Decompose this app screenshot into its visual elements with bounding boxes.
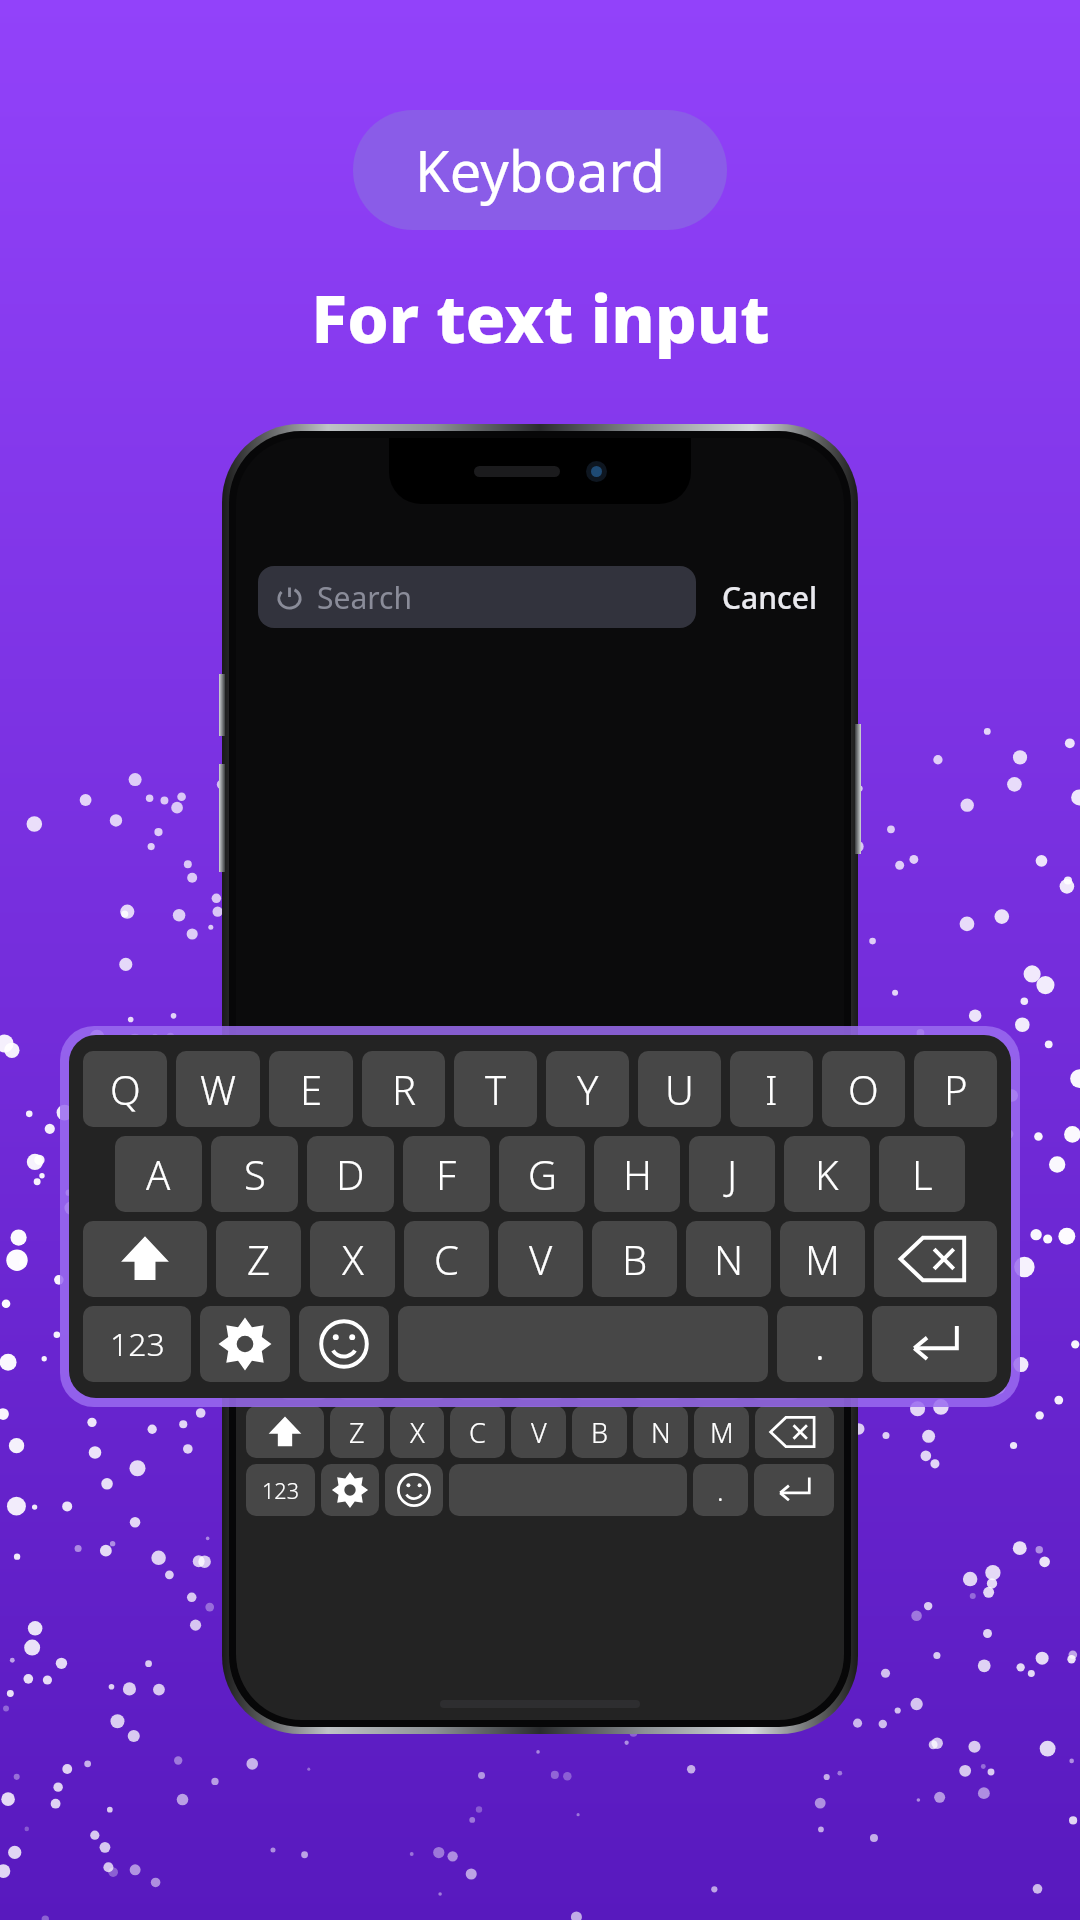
button[interactable]: C [450, 1406, 505, 1458]
staticText: X [342, 1232, 364, 1286]
button[interactable]: O [722, 1290, 775, 1342]
button[interactable]: G [499, 1136, 585, 1212]
button[interactable]: Y [546, 1051, 629, 1127]
staticText: N [714, 1232, 744, 1286]
button[interactable]: I [663, 1290, 716, 1342]
staticText: K [815, 1147, 839, 1201]
button[interactable]: P [914, 1051, 997, 1127]
button[interactable]: Enter [872, 1306, 997, 1382]
button[interactable]: . [777, 1306, 863, 1382]
button[interactable]: S [211, 1136, 298, 1212]
button[interactable]: V [498, 1221, 583, 1297]
staticText: T [505, 1298, 520, 1335]
button[interactable]: K [690, 1348, 743, 1400]
staticText: Search [317, 577, 412, 618]
staticText: N [651, 1414, 671, 1451]
button[interactable]: H [594, 1136, 680, 1212]
staticText: K [709, 1356, 725, 1393]
staticText: V [529, 1232, 553, 1286]
staticText: P [944, 1062, 968, 1116]
button[interactable]: R [426, 1290, 480, 1342]
staticText: V [531, 1414, 547, 1451]
button[interactable]: H [572, 1348, 625, 1400]
button[interactable]: Z [330, 1406, 384, 1458]
button[interactable]: M [780, 1221, 865, 1297]
button[interactable]: D [395, 1348, 448, 1400]
button[interactable]: Shift [246, 1406, 324, 1458]
staticText: M [805, 1232, 840, 1286]
button[interactable]: F [454, 1348, 507, 1400]
button[interactable]: . [693, 1464, 748, 1516]
staticText: C [469, 1414, 486, 1451]
staticText: H [589, 1356, 609, 1393]
button[interactable]: B [592, 1221, 677, 1297]
button[interactable]: L [749, 1348, 802, 1400]
button[interactable]: Emoji [385, 1464, 443, 1516]
staticText: F [436, 1147, 457, 1201]
button[interactable]: Search [258, 566, 696, 628]
button[interactable]: Q [83, 1051, 167, 1127]
button[interactable]: K [784, 1136, 870, 1212]
button[interactable]: P [781, 1290, 834, 1342]
button[interactable]: T [486, 1290, 539, 1342]
staticText: Cancel [722, 577, 818, 618]
button[interactable]: D [307, 1136, 394, 1212]
button[interactable]: Cancel [718, 573, 822, 622]
button[interactable]: Keyboard [353, 110, 727, 230]
staticText: O [848, 1062, 879, 1116]
button[interactable]: M [694, 1406, 749, 1458]
button[interactable]: Emoji [299, 1306, 389, 1382]
staticText: E [300, 1062, 323, 1116]
button[interactable]: N [686, 1221, 771, 1297]
staticText: D [412, 1356, 432, 1393]
button[interactable]: G [513, 1348, 566, 1400]
button[interactable]: B [572, 1406, 627, 1458]
staticText: F [474, 1356, 488, 1393]
staticText: H [623, 1147, 652, 1201]
button[interactable]: S [336, 1348, 389, 1400]
button[interactable]: X [390, 1406, 444, 1458]
button[interactable]: O [822, 1051, 905, 1127]
button[interactable]: Q [246, 1290, 300, 1342]
staticText: J [727, 1147, 738, 1201]
button[interactable]: F [403, 1136, 490, 1212]
staticText: J [654, 1356, 661, 1393]
button[interactable]: L [879, 1136, 965, 1212]
button[interactable]: E [366, 1290, 420, 1342]
button[interactable]: Backspace [874, 1221, 997, 1297]
button[interactable]: X [310, 1221, 395, 1297]
button[interactable]: 123 [246, 1464, 315, 1516]
button[interactable]: T [454, 1051, 537, 1127]
button[interactable]: E [269, 1051, 353, 1127]
button[interactable]: W [176, 1051, 260, 1127]
button[interactable]: Shift [83, 1221, 207, 1297]
button[interactable]: W [306, 1290, 360, 1342]
button[interactable]: J [689, 1136, 775, 1212]
button[interactable]: Y [545, 1290, 598, 1342]
button[interactable]: 123 [83, 1306, 191, 1382]
button[interactable]: Settings [321, 1464, 379, 1516]
button[interactable]: J [631, 1348, 684, 1400]
button[interactable]: V [511, 1406, 566, 1458]
staticText: G [530, 1356, 550, 1393]
button[interactable]: N [633, 1406, 688, 1458]
button[interactable]: Backspace [755, 1406, 834, 1458]
button[interactable]: Z [216, 1221, 301, 1297]
button[interactable]: A [115, 1136, 202, 1212]
button[interactable]: U [604, 1290, 657, 1342]
button[interactable]: C [404, 1221, 489, 1297]
button[interactable]: Settings [200, 1306, 290, 1382]
button[interactable]: I [730, 1051, 813, 1127]
button[interactable]: U [638, 1051, 721, 1127]
staticText: Y [577, 1062, 599, 1116]
button[interactable]: R [362, 1051, 445, 1127]
staticText: S [244, 1147, 266, 1201]
button[interactable]: A [278, 1348, 330, 1400]
staticText: 123 [110, 1322, 165, 1366]
staticText: Q [110, 1062, 141, 1116]
staticText: D [336, 1147, 365, 1201]
button[interactable]: Enter [754, 1464, 834, 1516]
staticText: For text input [311, 272, 770, 362]
